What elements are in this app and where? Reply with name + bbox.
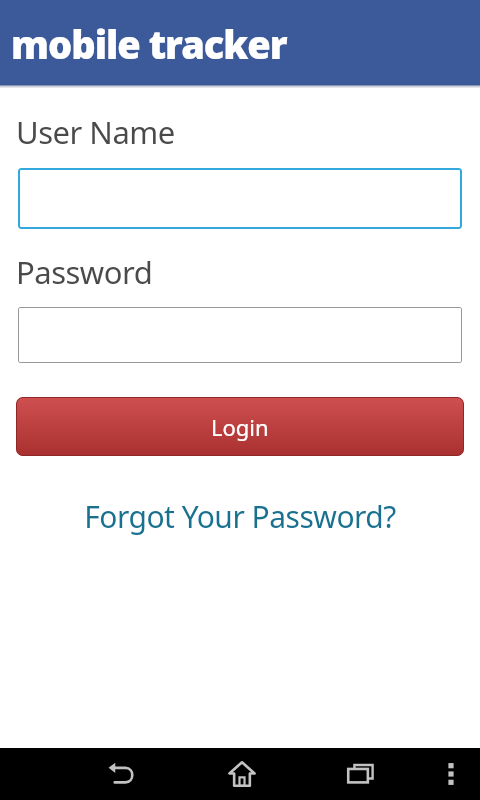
button[interactable] — [18, 307, 462, 363]
staticText: Password — [16, 251, 153, 293]
staticText: mobile tracker — [11, 18, 287, 70]
staticText: User Name — [16, 111, 175, 153]
staticText: Login — [211, 412, 269, 442]
button[interactable] — [432, 755, 470, 793]
button[interactable]: Forgot Your Password? — [84, 496, 396, 537]
button[interactable]: Login — [16, 397, 464, 456]
button[interactable] — [220, 752, 264, 796]
button[interactable] — [18, 168, 462, 229]
button[interactable] — [338, 752, 382, 796]
button[interactable] — [100, 752, 144, 796]
